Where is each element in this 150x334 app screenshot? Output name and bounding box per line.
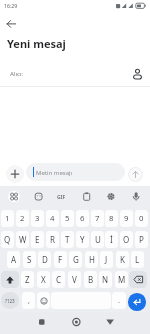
button[interactable]: A xyxy=(7,251,20,268)
button[interactable]: N xyxy=(99,271,112,288)
button[interactable]: Z xyxy=(21,271,34,288)
button[interactable]: Metin mesajı xyxy=(26,163,125,181)
button[interactable]: H xyxy=(85,251,98,268)
button[interactable]: K xyxy=(116,251,129,268)
button[interactable]: Alıcı: xyxy=(0,62,150,86)
button[interactable] xyxy=(6,165,24,183)
button[interactable]: B xyxy=(84,271,97,288)
staticText: 1 xyxy=(5,213,10,224)
staticText: Metin mesajı xyxy=(36,169,73,177)
staticText: K xyxy=(120,254,125,265)
staticText: 0 xyxy=(139,213,144,224)
button[interactable]: Y xyxy=(76,231,89,248)
staticText: D xyxy=(42,254,48,265)
button[interactable]: . xyxy=(112,292,126,309)
staticText: N xyxy=(102,274,109,285)
button[interactable] xyxy=(66,312,87,333)
button[interactable]: F xyxy=(54,251,67,268)
button[interactable]: 3 xyxy=(31,210,44,227)
button[interactable]: 5 xyxy=(61,210,74,227)
button[interactable]: , xyxy=(22,292,35,309)
button[interactable]: 1 xyxy=(1,210,14,227)
button[interactable]: G xyxy=(69,251,82,268)
staticText: 2 xyxy=(20,213,25,224)
button[interactable]: J xyxy=(100,251,113,268)
staticText: P xyxy=(139,234,144,245)
staticText: J xyxy=(105,254,108,265)
button[interactable] xyxy=(128,167,143,182)
staticText: 5 xyxy=(65,213,70,224)
staticText: R xyxy=(50,234,55,245)
button[interactable]: U xyxy=(91,231,104,248)
staticText: V xyxy=(72,274,77,285)
staticText: C xyxy=(56,274,62,285)
button[interactable] xyxy=(100,312,121,333)
button[interactable]: 7 xyxy=(91,210,104,227)
staticText: 6 xyxy=(80,213,85,224)
button[interactable]: R xyxy=(46,231,59,248)
button[interactable]: Q xyxy=(1,231,14,248)
button[interactable]: L xyxy=(131,251,144,268)
staticText: A xyxy=(11,254,17,265)
staticText: S xyxy=(27,254,32,265)
staticText: Yeni mesaj xyxy=(7,36,66,51)
staticText: 4 xyxy=(50,213,55,224)
staticText: 7 xyxy=(95,213,100,224)
staticText: , xyxy=(28,296,30,306)
staticText: Z xyxy=(25,274,30,285)
button[interactable]: 0 xyxy=(135,210,148,227)
staticText: M xyxy=(118,274,126,285)
button[interactable] xyxy=(128,293,146,311)
button[interactable]: M xyxy=(115,271,128,288)
staticText: O xyxy=(123,234,130,245)
button[interactable] xyxy=(37,292,50,309)
button[interactable]: P xyxy=(135,231,148,248)
staticText: GIF xyxy=(57,194,66,201)
button[interactable]: T xyxy=(61,231,74,248)
button[interactable]: 8 xyxy=(105,210,118,227)
button[interactable]: ?123 xyxy=(1,292,19,309)
button[interactable] xyxy=(31,312,52,333)
button[interactable]: İ xyxy=(105,231,118,248)
staticText: G xyxy=(73,254,79,265)
staticText: E xyxy=(35,234,40,245)
button[interactable]: E xyxy=(31,231,44,248)
button[interactable]: C xyxy=(52,271,65,288)
staticText: X xyxy=(41,274,46,285)
staticText: . xyxy=(118,296,120,306)
staticText: ?123 xyxy=(5,298,15,304)
button[interactable]: 6 xyxy=(76,210,89,227)
button[interactable]: O xyxy=(120,231,133,248)
button[interactable] xyxy=(129,271,147,288)
staticText: H xyxy=(89,254,95,265)
staticText: W xyxy=(19,234,27,245)
staticText: 16:29 xyxy=(4,2,18,9)
button[interactable] xyxy=(4,17,19,31)
staticText: Q xyxy=(4,234,11,245)
staticText: İ xyxy=(110,234,113,245)
staticText: T xyxy=(65,234,70,245)
button[interactable]: V xyxy=(68,271,81,288)
staticText: 8 xyxy=(109,213,114,224)
button[interactable] xyxy=(1,271,19,288)
button[interactable]: W xyxy=(16,231,29,248)
staticText: Y xyxy=(80,234,85,245)
button[interactable]: D xyxy=(38,251,51,268)
staticText: Alıcı: xyxy=(10,70,23,78)
button[interactable]: 4 xyxy=(46,210,59,227)
button[interactable]: X xyxy=(37,271,50,288)
button[interactable]: S xyxy=(23,251,36,268)
staticText: U xyxy=(95,234,101,245)
button[interactable]: 9 xyxy=(120,210,133,227)
staticText: 3 xyxy=(35,213,40,224)
staticText: F xyxy=(58,254,63,265)
button[interactable]: 2 xyxy=(16,210,29,227)
staticText: B xyxy=(88,274,94,285)
staticText: L xyxy=(135,254,140,265)
staticText: 9 xyxy=(124,213,129,224)
